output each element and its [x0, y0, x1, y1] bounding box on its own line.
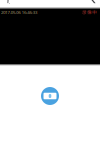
button[interactable]: Back [0, 0, 16, 7]
button[interactable]: Share [84, 0, 100, 7]
staticText: 录像中 [82, 9, 97, 16]
staticText: 2017-05-06 16:46:33 [1, 9, 37, 15]
button[interactable]: Capture [41, 87, 59, 105]
